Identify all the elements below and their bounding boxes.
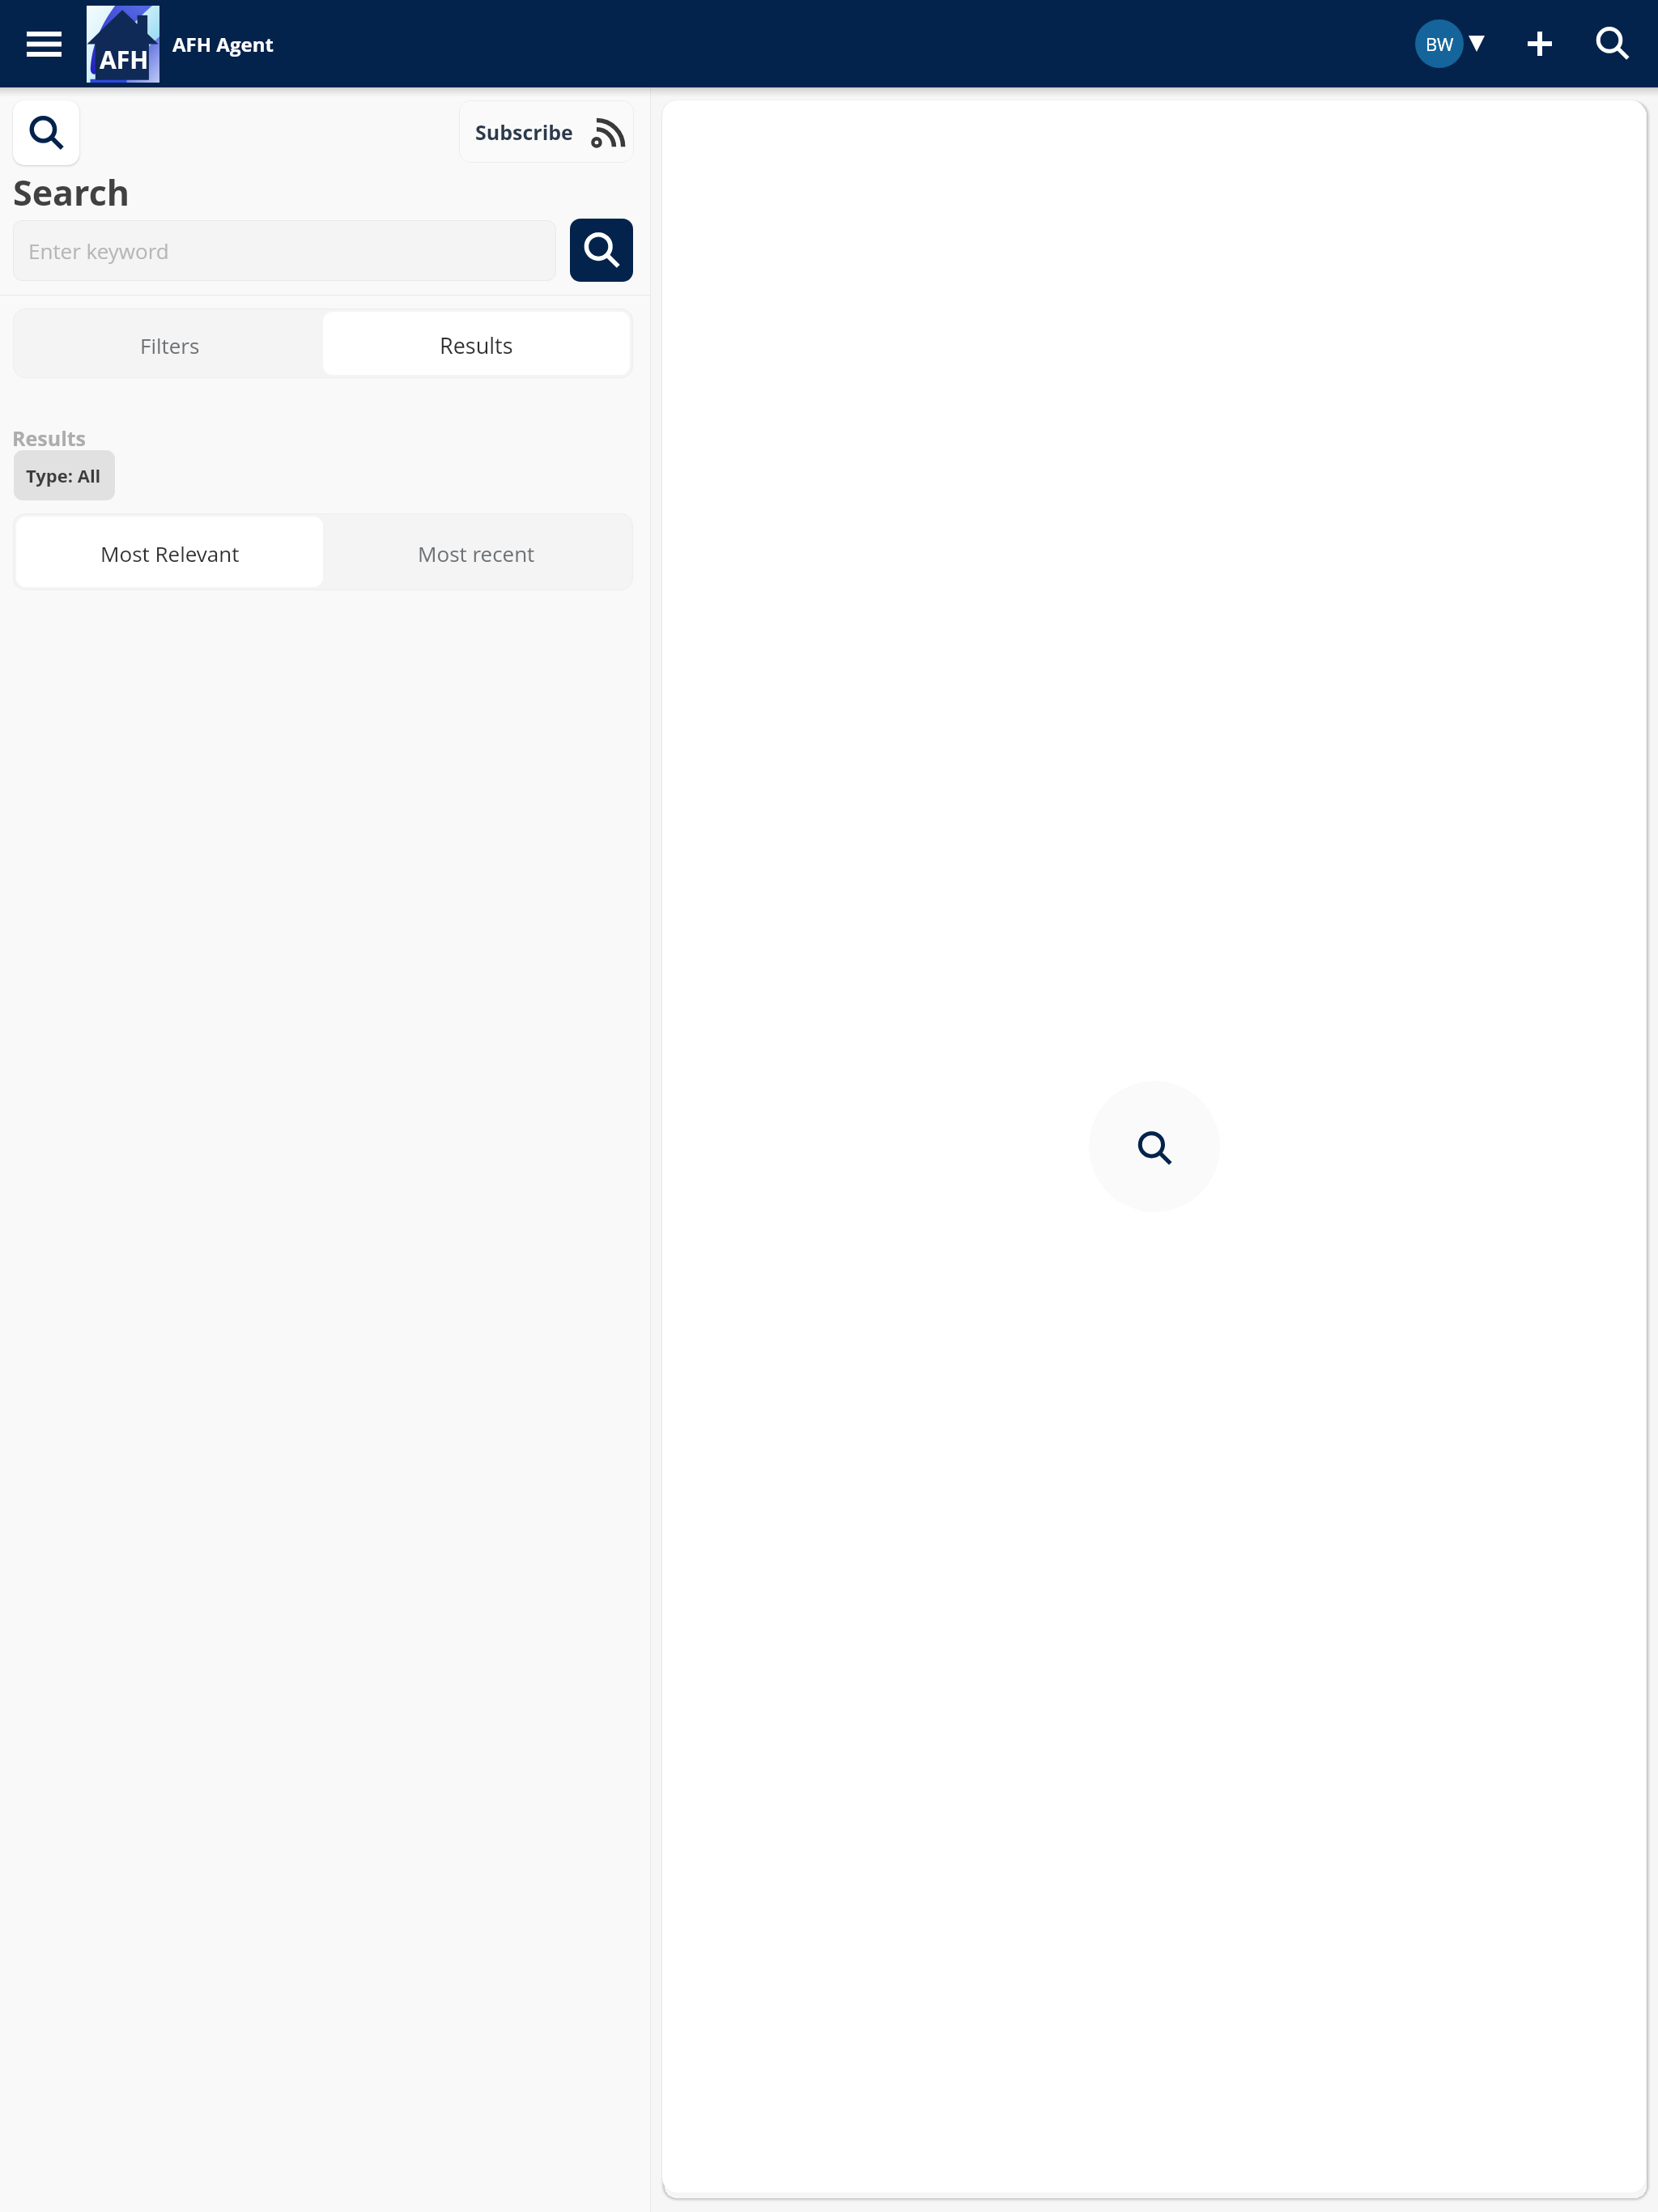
staticText: Most Relevant xyxy=(100,539,240,568)
button[interactable]: Type: All xyxy=(14,450,115,500)
button[interactable]: Search xyxy=(570,219,633,282)
staticText: Type: All xyxy=(26,463,101,487)
button[interactable]: Most recent xyxy=(323,517,630,587)
staticText: Results xyxy=(440,330,513,360)
button[interactable]: Subscribe xyxy=(459,100,634,163)
staticText: Subscribe xyxy=(475,118,573,146)
staticText: BW xyxy=(1426,32,1454,56)
button[interactable]: Search xyxy=(13,100,79,165)
staticText: AFH xyxy=(100,43,149,76)
button[interactable]: Search xyxy=(1592,23,1634,65)
button[interactable]: Most Relevant xyxy=(16,517,323,587)
button[interactable]: Enter keyword xyxy=(13,220,556,281)
button[interactable]: Account menu xyxy=(1415,19,1485,68)
staticText: Filters xyxy=(140,331,200,359)
staticText: AFH Agent xyxy=(172,31,274,57)
button[interactable]: Menu xyxy=(21,21,66,66)
staticText: Most recent xyxy=(418,539,535,568)
staticText: Enter keyword xyxy=(28,236,169,265)
button[interactable]: Results xyxy=(323,312,630,375)
button[interactable]: Filters xyxy=(16,312,323,375)
button[interactable]: Add xyxy=(1519,23,1561,65)
staticText: Results xyxy=(12,424,87,452)
staticText: Search xyxy=(13,168,130,216)
